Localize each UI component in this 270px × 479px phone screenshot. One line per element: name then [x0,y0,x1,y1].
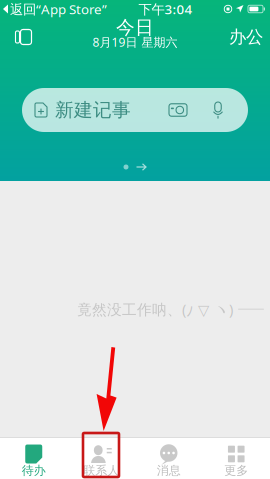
staticText: 消息 [157,463,181,478]
staticText: 今日 [116,16,154,39]
staticText: 更多 [224,463,248,478]
staticText: 联系人 [83,463,119,478]
button[interactable]: 语音 [198,88,238,132]
staticText: 办公 [229,26,263,48]
staticText: 下午3:04 [138,0,192,18]
staticText: 竟然没工作呐、(ﾉ ▽ ヽ) [77,299,233,319]
button[interactable]: 待办 [0,438,67,479]
button[interactable]: 更多 [202,438,270,479]
button[interactable]: 新建记事 [22,88,135,132]
staticText: 新建记事 [55,98,131,121]
staticText: 返回“App Store” [10,0,107,18]
button[interactable]: 侧边栏 [0,18,42,56]
button[interactable]: 联系人 [67,438,135,479]
staticText: 待办 [22,463,46,478]
button[interactable]: 消息 [135,438,202,479]
button[interactable]: 拍照 [158,88,198,132]
button[interactable]: 办公 [222,18,270,56]
staticText: 8月19日 星期六 [92,34,177,50]
